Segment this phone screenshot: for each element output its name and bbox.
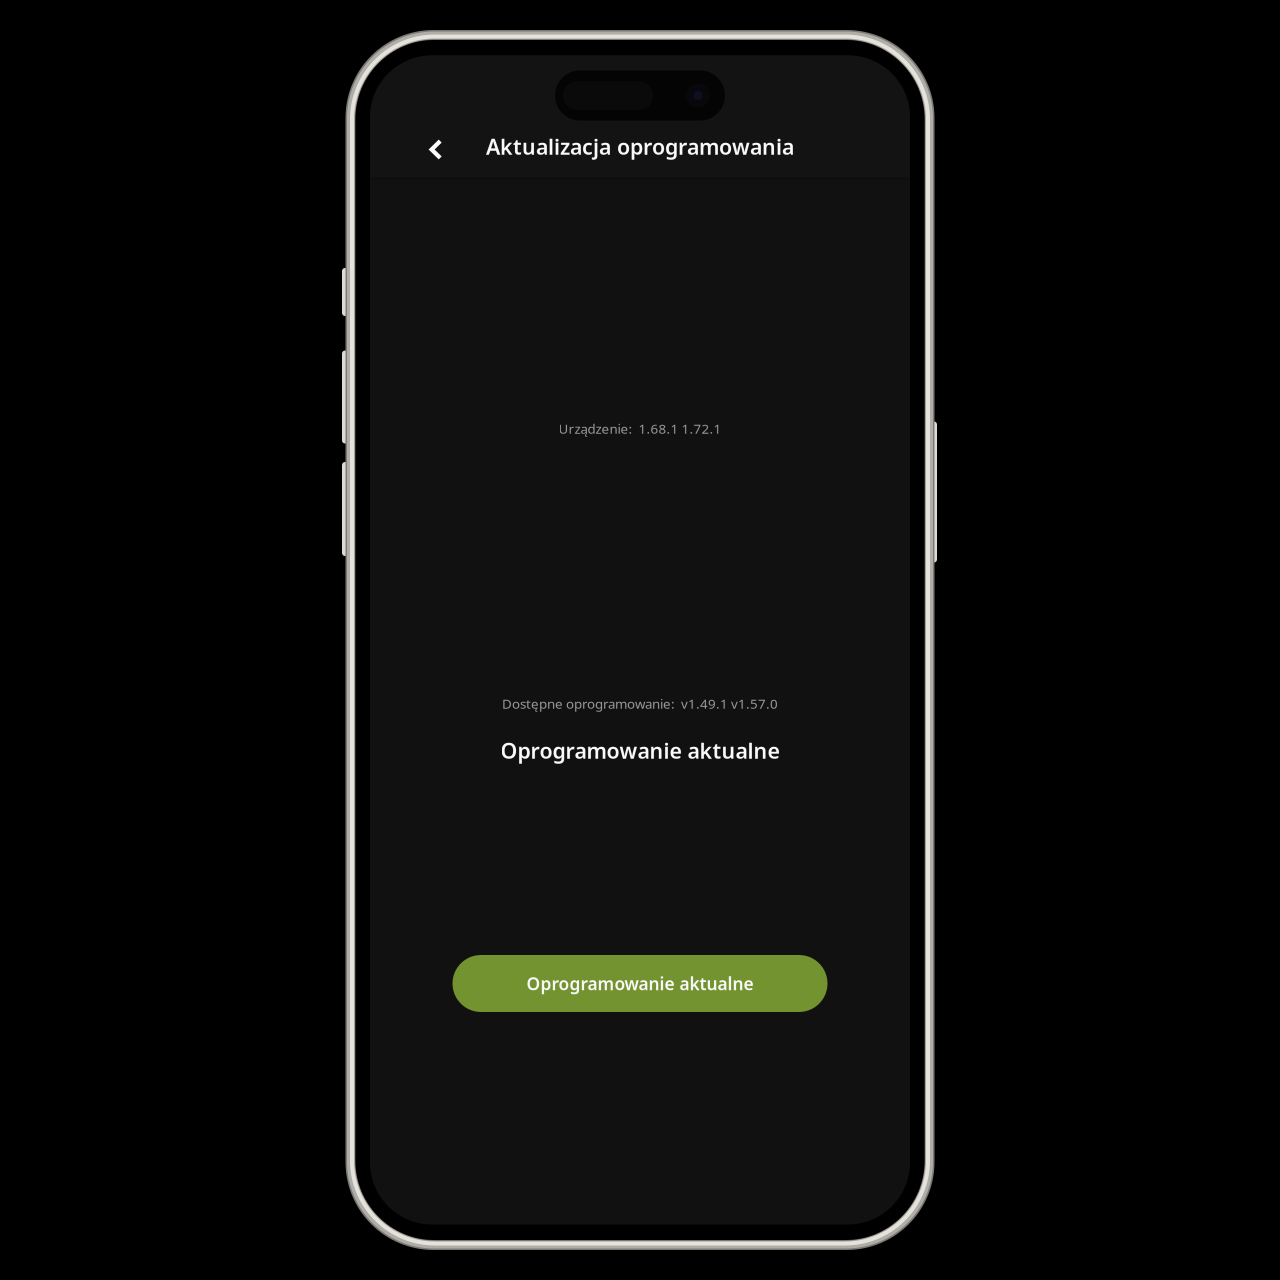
staticText: Oprogramowanie aktualne (500, 736, 779, 765)
button[interactable]: Oprogramowanie aktualne (452, 955, 827, 1012)
button[interactable]: Back (412, 125, 460, 173)
staticText: Aktualizacja oprogramowania (486, 132, 794, 161)
staticText: Urządzenie: 1.68.1 1.72.1 (558, 420, 721, 437)
staticText: Dostępne oprogramowanie: v1.49.1 v1.57.0 (502, 695, 778, 712)
staticText: Oprogramowanie aktualne (526, 972, 753, 995)
